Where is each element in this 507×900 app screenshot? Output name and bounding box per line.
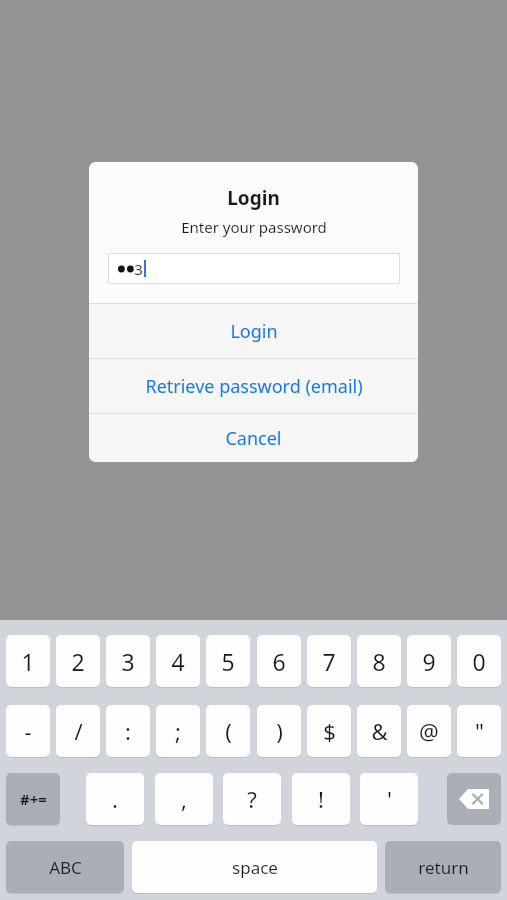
button[interactable]: return bbox=[385, 841, 501, 893]
staticText: Enter your password bbox=[181, 217, 327, 237]
button[interactable]: 2 bbox=[56, 635, 100, 687]
button[interactable]: Backspace bbox=[447, 773, 501, 825]
button[interactable]: & bbox=[357, 705, 401, 757]
button[interactable]: . bbox=[86, 773, 144, 825]
staticText: @ bbox=[419, 716, 439, 746]
staticText: : bbox=[125, 716, 131, 746]
staticText: 2 bbox=[71, 646, 85, 677]
staticText: Login bbox=[227, 185, 280, 211]
staticText: 7 bbox=[322, 646, 336, 677]
button[interactable]: #+= bbox=[6, 773, 60, 825]
staticText: 0 bbox=[472, 646, 486, 677]
staticText: return bbox=[418, 856, 469, 879]
staticText: 3 bbox=[134, 259, 143, 279]
staticText: ' bbox=[387, 784, 392, 814]
staticText: - bbox=[24, 716, 32, 746]
button[interactable]: 0 bbox=[457, 635, 501, 687]
button[interactable]: 9 bbox=[407, 635, 451, 687]
staticText: #+= bbox=[20, 789, 47, 809]
button[interactable]: ) bbox=[257, 705, 301, 757]
staticText: 4 bbox=[171, 646, 185, 677]
button[interactable]: - bbox=[6, 705, 50, 757]
button[interactable]: Retrieve password (email) bbox=[89, 359, 418, 413]
button[interactable]: ' bbox=[360, 773, 418, 825]
staticText: 5 bbox=[221, 646, 235, 677]
staticText: 6 bbox=[272, 646, 286, 677]
button[interactable]: Cancel bbox=[89, 414, 418, 462]
staticText: Login bbox=[230, 319, 278, 344]
staticText: . bbox=[112, 784, 118, 814]
staticText: ABC bbox=[49, 856, 82, 879]
button[interactable]: $ bbox=[307, 705, 351, 757]
button[interactable]: 4 bbox=[156, 635, 200, 687]
staticText: ? bbox=[247, 784, 257, 814]
button[interactable]: 6 bbox=[257, 635, 301, 687]
staticText: Cancel bbox=[225, 426, 282, 451]
staticText: , bbox=[181, 784, 187, 814]
button[interactable]: 3 bbox=[106, 635, 150, 687]
staticText: $ bbox=[323, 716, 336, 746]
staticText: " bbox=[475, 716, 484, 746]
button[interactable]: 7 bbox=[307, 635, 351, 687]
button[interactable]: ; bbox=[156, 705, 200, 757]
button[interactable]: ABC bbox=[6, 841, 124, 893]
button[interactable]: , bbox=[155, 773, 213, 825]
button[interactable]: 8 bbox=[357, 635, 401, 687]
staticText: ! bbox=[318, 784, 324, 814]
button[interactable]: ? bbox=[223, 773, 281, 825]
button[interactable]: space bbox=[132, 841, 377, 893]
button[interactable]: ! bbox=[292, 773, 350, 825]
staticText: Retrieve password (email) bbox=[145, 374, 363, 399]
staticText: ( bbox=[225, 716, 232, 746]
button[interactable]: 1 bbox=[6, 635, 50, 687]
button[interactable]: / bbox=[56, 705, 100, 757]
button[interactable]: 3 bbox=[108, 253, 400, 284]
staticText: space bbox=[232, 856, 278, 879]
staticText: ; bbox=[175, 716, 181, 746]
button[interactable]: ( bbox=[206, 705, 250, 757]
staticText: 8 bbox=[372, 646, 386, 677]
button[interactable]: 5 bbox=[206, 635, 250, 687]
staticText: ) bbox=[276, 716, 283, 746]
staticText: & bbox=[371, 716, 388, 746]
button[interactable]: Login bbox=[89, 304, 418, 358]
staticText: / bbox=[74, 716, 83, 746]
staticText: 3 bbox=[121, 646, 135, 677]
staticText: 1 bbox=[21, 646, 35, 677]
staticText: 9 bbox=[422, 646, 436, 677]
button[interactable]: @ bbox=[407, 705, 451, 757]
button[interactable]: " bbox=[457, 705, 501, 757]
button[interactable]: : bbox=[106, 705, 150, 757]
